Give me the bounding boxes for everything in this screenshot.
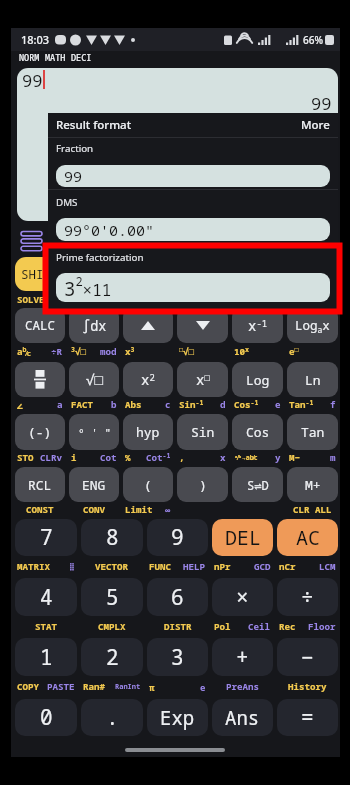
- staticText: M+: [305, 476, 321, 494]
- button[interactable]: 3: [147, 638, 208, 676]
- staticText: mod: [100, 345, 117, 358]
- staticText: b: [111, 398, 117, 411]
- button[interactable]: Exp: [147, 699, 208, 736]
- button[interactable]: 7: [15, 519, 77, 556]
- button[interactable]: ALPHA: [69, 257, 119, 291]
- button[interactable]: hyp: [123, 414, 173, 450]
- staticText: Logax: [295, 317, 330, 335]
- button[interactable]: 4: [15, 578, 77, 616]
- staticText: SHIFT: [21, 266, 59, 283]
- button[interactable]: 0: [15, 699, 77, 736]
- staticText: x: [220, 451, 226, 464]
- staticText: 3√□: [71, 345, 86, 358]
- button[interactable]: x□: [177, 362, 228, 397]
- staticText: M−: [289, 451, 301, 464]
- button[interactable]: ×: [212, 578, 273, 616]
- staticText: CALC: [25, 317, 56, 334]
- button[interactable]: ° ' ": [69, 414, 119, 450]
- staticText: 9: [171, 523, 184, 552]
- staticText: ∫dx: [82, 317, 107, 335]
- button[interactable]: 32×11: [56, 273, 330, 302]
- button[interactable]: [177, 308, 228, 343]
- button[interactable]: −: [277, 638, 338, 676]
- button[interactable]: SHIFT: [15, 257, 65, 291]
- button[interactable]: DEL: [212, 519, 273, 556]
- staticText: Rec: [279, 620, 296, 633]
- button[interactable]: 6: [147, 578, 208, 616]
- button[interactable]: [123, 308, 173, 343]
- staticText: S⇌D: [247, 477, 269, 493]
- staticText: PreAns: [226, 680, 260, 693]
- staticText: 3: [171, 643, 184, 672]
- staticText: ° ' ": [78, 425, 111, 440]
- staticText: CLR ALL: [293, 503, 332, 516]
- button[interactable]: Ans: [212, 699, 273, 736]
- button[interactable]: RCL: [15, 467, 65, 502]
- button[interactable]: Cos: [232, 414, 283, 450]
- button[interactable]: ): [177, 467, 228, 502]
- button[interactable]: Log: [232, 362, 283, 397]
- staticText: (: [144, 476, 152, 494]
- button[interactable]: 99°0'0.00": [56, 218, 330, 241]
- staticText: RCL: [28, 476, 52, 494]
- button[interactable]: 99: [56, 165, 330, 187]
- staticText: RanInt: [115, 682, 141, 692]
- staticText: DISTR: [164, 620, 192, 633]
- button[interactable]: Logax: [287, 308, 338, 343]
- staticText: SOLVE: [17, 293, 45, 306]
- button[interactable]: ÷: [277, 578, 338, 616]
- staticText: Cos-1: [234, 398, 259, 411]
- button[interactable]: 99: [17, 68, 338, 221]
- button[interactable]: Tan: [287, 414, 338, 450]
- button[interactable]: AC: [277, 519, 338, 556]
- staticText: AC: [296, 524, 320, 551]
- button[interactable]: 8: [81, 519, 143, 556]
- staticText: Sin-1: [179, 398, 204, 411]
- staticText: ⣿: [69, 562, 75, 571]
- button[interactable]: Sin: [177, 414, 228, 450]
- button[interactable]: 5: [81, 578, 143, 616]
- button[interactable]: x-1: [232, 308, 283, 343]
- button[interactable]: ENG: [69, 467, 119, 502]
- staticText: □√□: [179, 345, 194, 358]
- staticText: CLRv: [40, 451, 63, 464]
- button[interactable]: M+: [287, 467, 338, 502]
- button[interactable]: [15, 362, 65, 397]
- button[interactable]: 9: [147, 519, 208, 556]
- button[interactable]: 1: [15, 638, 77, 676]
- staticText: Tan: [301, 423, 325, 441]
- button[interactable]: ∫dx: [69, 308, 119, 343]
- staticText: 66%: [303, 33, 323, 47]
- button[interactable]: .: [81, 699, 143, 736]
- staticText: x2: [141, 370, 155, 389]
- button[interactable]: Result format: [56, 113, 330, 137]
- button[interactable]: x2: [123, 362, 173, 397]
- staticText: e: [200, 681, 206, 693]
- staticText: DEL: [225, 524, 261, 551]
- button[interactable]: (: [123, 467, 173, 502]
- staticText: ÷R: [51, 345, 63, 358]
- staticText: .: [106, 703, 119, 732]
- staticText: %: [125, 451, 131, 464]
- button[interactable]: =: [277, 699, 338, 736]
- staticText: 99: [311, 92, 332, 115]
- button[interactable]: Menu: [21, 231, 42, 247]
- staticText: 18:03: [21, 32, 50, 47]
- staticText: 2: [106, 643, 119, 672]
- button[interactable]: CALC: [15, 308, 65, 343]
- button[interactable]: Ln: [287, 362, 338, 397]
- staticText: π: [149, 681, 155, 693]
- button[interactable]: S⇌D: [232, 467, 283, 502]
- button[interactable]: +: [212, 638, 273, 676]
- staticText: ∞: [165, 504, 171, 516]
- staticText: x-1: [248, 316, 268, 335]
- button[interactable]: 2: [81, 638, 143, 676]
- staticText: m: [330, 451, 336, 464]
- button[interactable]: √□: [69, 362, 119, 397]
- staticText: History: [288, 680, 327, 693]
- staticText: c: [165, 398, 171, 411]
- staticText: Ln: [305, 371, 321, 389]
- button[interactable]: (-): [15, 414, 65, 450]
- staticText: Tan-1: [289, 398, 314, 411]
- staticText: ×: [236, 583, 249, 612]
